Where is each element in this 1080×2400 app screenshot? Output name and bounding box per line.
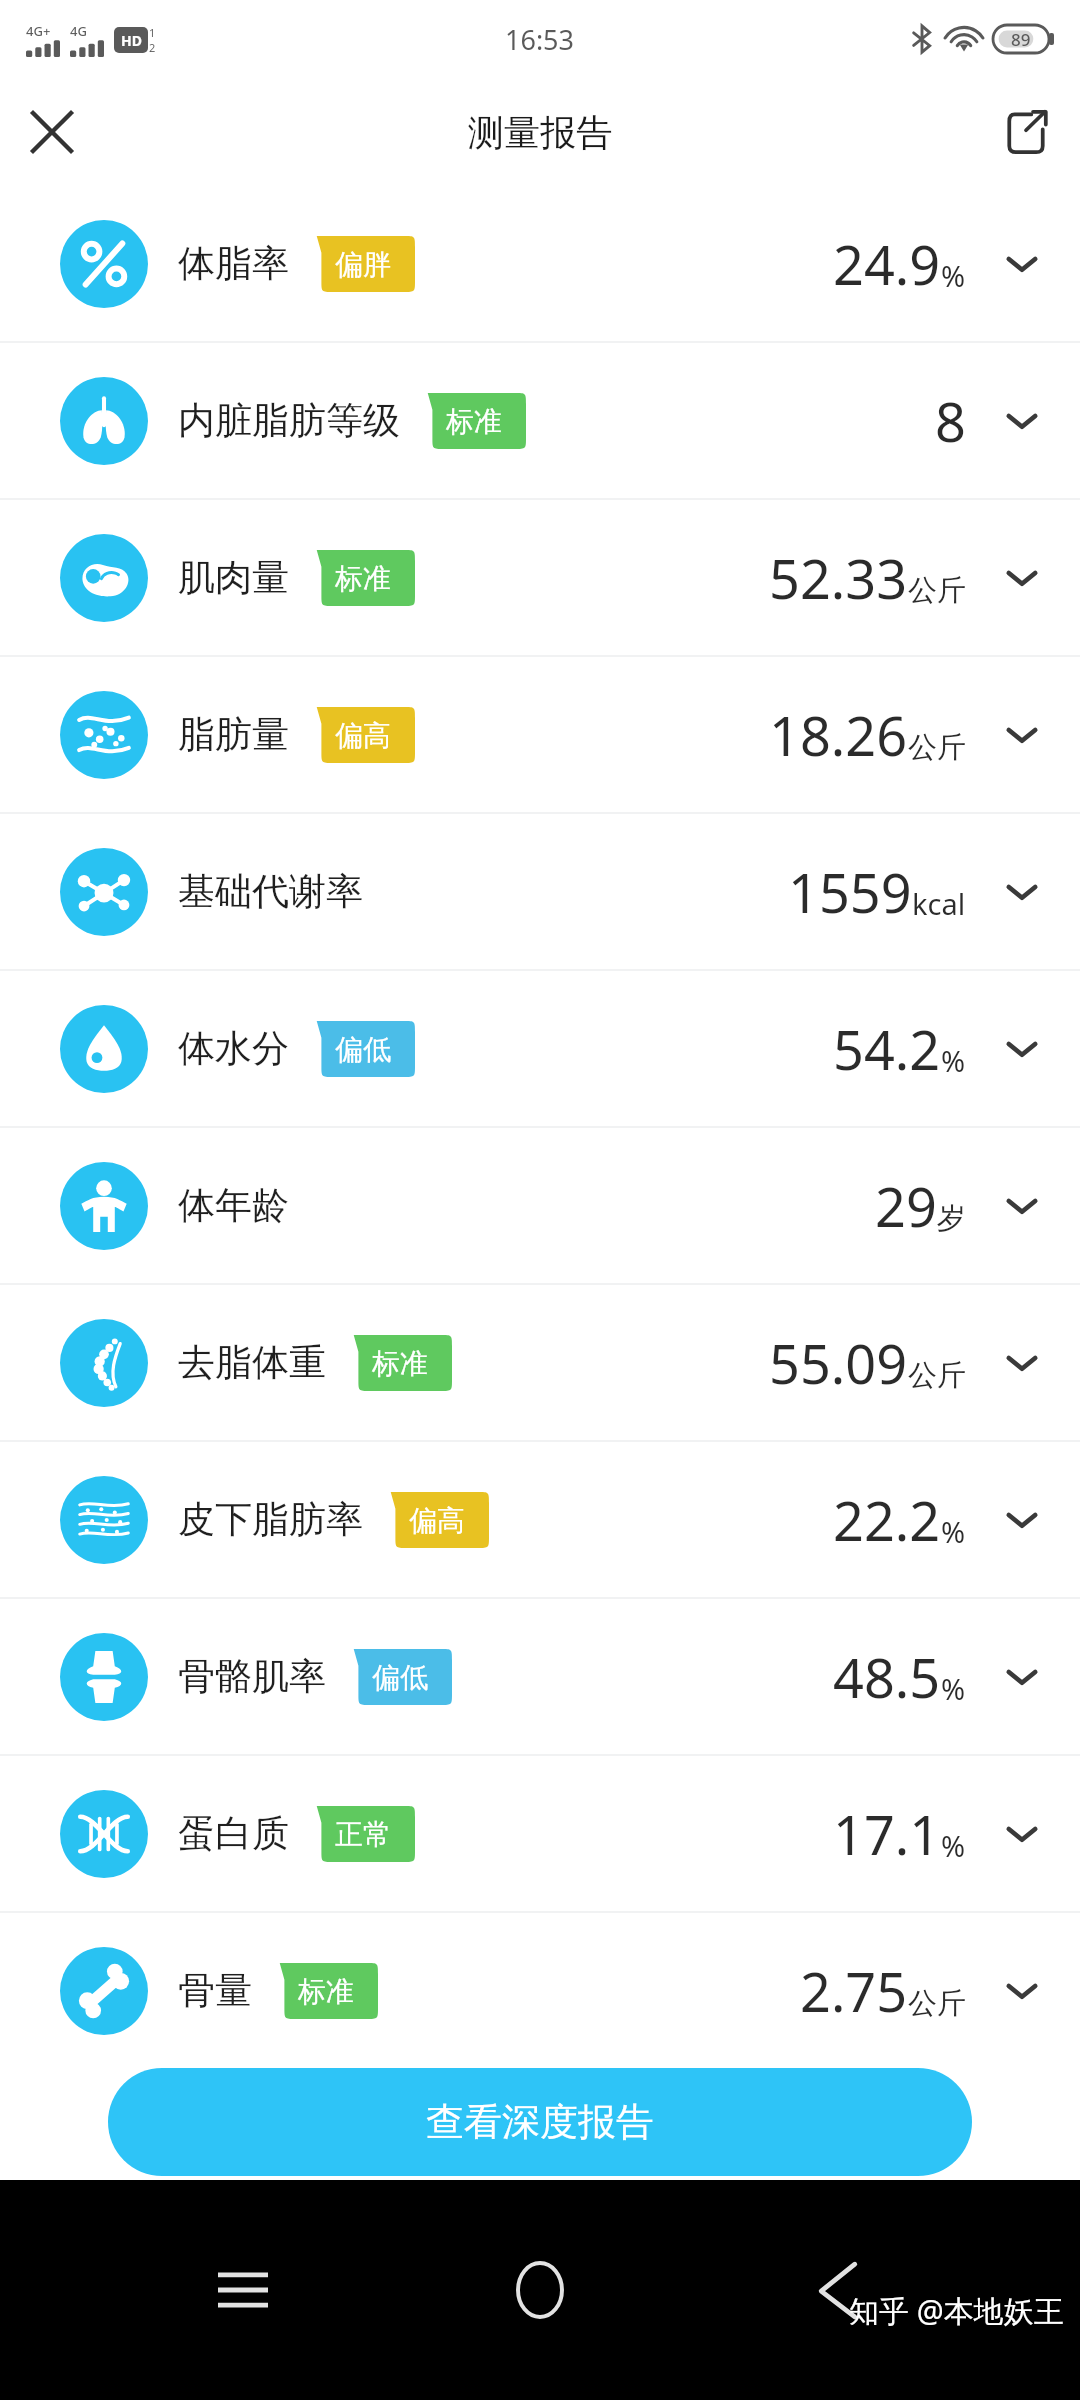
staticText: 蛋白质 [178, 1810, 289, 1857]
staticText: 16:53 [505, 21, 575, 58]
staticText: HD [121, 31, 142, 50]
staticText: 2.75 [800, 1954, 908, 2028]
staticText: 标准 [348, 1346, 452, 1381]
button[interactable]: Back [783, 2235, 893, 2345]
staticText: 17.1 [833, 1797, 941, 1871]
staticText: 测量报告 [468, 110, 612, 155]
staticText: 骨量 [178, 1967, 252, 2014]
button[interactable]: 脂肪量 [0, 657, 1080, 812]
button[interactable]: Home [485, 2235, 595, 2345]
button[interactable]: 蛋白质 [0, 1756, 1080, 1911]
staticText: 22.2 [833, 1483, 941, 1557]
staticText: 偏低 [348, 1660, 452, 1695]
staticText: 公斤 [908, 1357, 966, 1394]
staticText: 脂肪量 [178, 711, 289, 758]
staticText: 48.5 [833, 1640, 941, 1714]
button[interactable]: 体水分 [0, 971, 1080, 1126]
staticText: 公斤 [908, 729, 966, 766]
button[interactable]: 内脏脂肪等级 [0, 343, 1080, 498]
staticText: 4G [70, 22, 87, 40]
staticText: 内脏脂肪等级 [178, 397, 400, 444]
staticText: 公斤 [908, 572, 966, 609]
staticText: 4G+ [26, 22, 51, 40]
staticText: 查看深度报告 [426, 2098, 654, 2146]
staticText: 89 [1011, 28, 1031, 51]
staticText: 偏高 [311, 718, 415, 753]
staticText: 标准 [274, 1974, 378, 2009]
staticText: 骨骼肌率 [178, 1653, 326, 1700]
staticText: % [941, 1826, 966, 1865]
staticText: 1559 [788, 855, 912, 929]
staticText: 皮下脂肪率 [178, 1496, 363, 1543]
staticText: 基础代谢率 [178, 868, 363, 915]
button[interactable]: 查看深度报告 [108, 2068, 972, 2176]
staticText: 18.26 [769, 698, 908, 772]
staticText: 标准 [422, 404, 526, 439]
staticText: 标准 [311, 561, 415, 596]
staticText: 体年龄 [178, 1182, 289, 1229]
staticText: 肌肉量 [178, 554, 289, 601]
staticText: % [941, 1041, 966, 1080]
staticText: 54.2 [833, 1012, 941, 1086]
button[interactable]: 去脂体重 [0, 1285, 1080, 1440]
staticText: 正常 [311, 1817, 415, 1852]
staticText: kcal [912, 884, 966, 923]
button[interactable]: 骨骼肌率 [0, 1599, 1080, 1754]
staticText: 公斤 [908, 1985, 966, 2022]
button[interactable]: 肌肉量 [0, 500, 1080, 655]
staticText: 24.9 [833, 227, 941, 301]
staticText: 52.33 [769, 541, 908, 615]
staticText: 体脂率 [178, 240, 289, 287]
button[interactable]: 基础代谢率 [0, 814, 1080, 969]
staticText: 8 [935, 384, 966, 458]
button[interactable]: 体脂率 [0, 186, 1080, 341]
button[interactable]: 体年龄 [0, 1128, 1080, 1283]
staticText: 55.09 [769, 1326, 908, 1400]
staticText: 偏胖 [311, 247, 415, 282]
button[interactable]: Close [16, 96, 88, 168]
staticText: 体水分 [178, 1025, 289, 1072]
staticText: 知乎 @本地妖王 [849, 2290, 1064, 2331]
staticText: 岁 [937, 1200, 966, 1237]
button[interactable]: 骨量 [0, 1913, 1080, 2068]
staticText: % [941, 1512, 966, 1551]
button[interactable]: Share [990, 96, 1062, 168]
staticText: % [941, 1669, 966, 1708]
staticText: % [941, 256, 966, 295]
staticText: 偏高 [385, 1503, 489, 1538]
staticText: 29 [875, 1169, 937, 1243]
staticText: 2 [149, 40, 156, 55]
button[interactable]: Recents [188, 2235, 298, 2345]
staticText: 去脂体重 [178, 1339, 326, 1386]
button[interactable]: 皮下脂肪率 [0, 1442, 1080, 1597]
staticText: 1 [149, 25, 156, 40]
staticText: 偏低 [311, 1032, 415, 1067]
